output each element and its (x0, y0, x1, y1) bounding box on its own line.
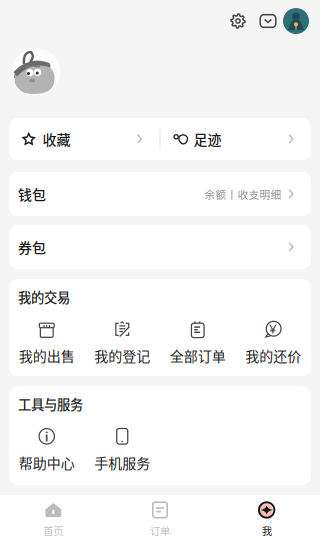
button[interactable]: i (9, 427, 84, 473)
button[interactable]: 我的登记 (84, 320, 160, 366)
button[interactable]: Messages (253, 8, 283, 34)
button[interactable]: 足迹 (160, 118, 311, 160)
button[interactable]: 首页 (0, 495, 107, 545)
button[interactable]: 我 (213, 495, 320, 545)
staticText: 我 (262, 523, 272, 538)
staticText: 工具与服务 (18, 394, 83, 413)
staticText: 手机服务 (94, 452, 150, 473)
staticText: 帮助中心 (19, 452, 75, 473)
button[interactable]: 全部订单 (160, 320, 235, 366)
button[interactable]: 收藏 (9, 118, 159, 160)
staticText: 钱包 (18, 184, 46, 204)
staticText: 我的出售 (19, 345, 75, 366)
staticText: 全部订单 (170, 345, 226, 366)
staticText: 余额丨收支明细 (204, 186, 281, 202)
staticText: 订单 (150, 523, 170, 538)
staticText: 收藏 (42, 129, 70, 149)
button[interactable]: Profile (283, 8, 309, 34)
button[interactable]: ¥ (235, 320, 311, 366)
staticText: ¥ (269, 319, 277, 337)
staticText: 我的交易 (18, 287, 70, 306)
button[interactable]: 手机服务 (84, 427, 160, 473)
button[interactable]: Settings (223, 8, 253, 34)
staticText: 我的登记 (94, 345, 150, 366)
staticText: 足迹 (193, 129, 221, 149)
button[interactable]: 券包 (9, 225, 311, 269)
button[interactable]: 钱包 (9, 172, 311, 216)
button[interactable]: Open profile (12, 48, 60, 96)
staticText: 券包 (18, 237, 46, 257)
button[interactable]: 订单 (107, 495, 213, 545)
staticText: i (45, 427, 49, 445)
staticText: 我的还价 (245, 345, 301, 366)
staticText: 首页 (43, 523, 63, 538)
button[interactable]: 我的出售 (9, 320, 84, 366)
